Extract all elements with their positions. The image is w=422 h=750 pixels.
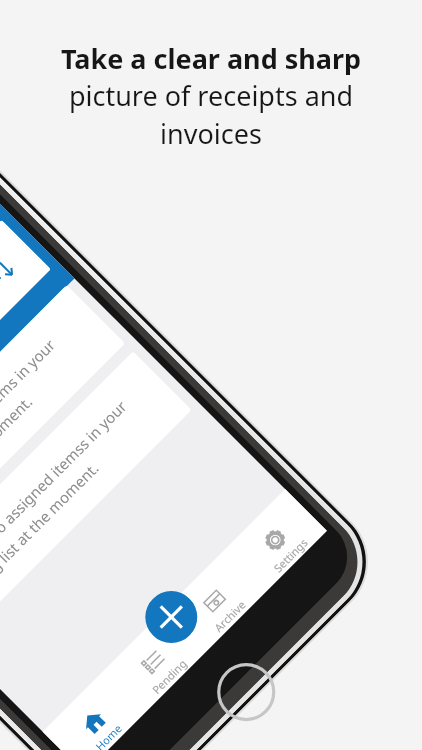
button[interactable]: Archive: [163, 550, 266, 652]
button[interactable]: Settings: [224, 489, 327, 592]
button[interactable]: Pending: [103, 611, 205, 713]
button[interactable]: Sort: [0, 220, 51, 420]
staticText: picture of receipts and invoices: [30, 77, 392, 152]
staticText: Take a clear and sharp: [30, 40, 392, 77]
button[interactable]: There are no assigned itemss in your pen…: [0, 351, 192, 638]
button[interactable]: Close: [134, 580, 208, 654]
staticText: Home: [92, 720, 125, 750]
staticText: Settings: [270, 535, 311, 575]
staticText: Archive: [211, 597, 249, 635]
staticText: There are no assigned itemss in your pen…: [0, 379, 164, 611]
staticText: Pending: [149, 656, 190, 697]
staticText: There are no assigend items in your pend…: [0, 313, 98, 544]
button[interactable]: There are no assigend items in your pend…: [0, 285, 125, 572]
button[interactable]: Home: [43, 671, 144, 750]
